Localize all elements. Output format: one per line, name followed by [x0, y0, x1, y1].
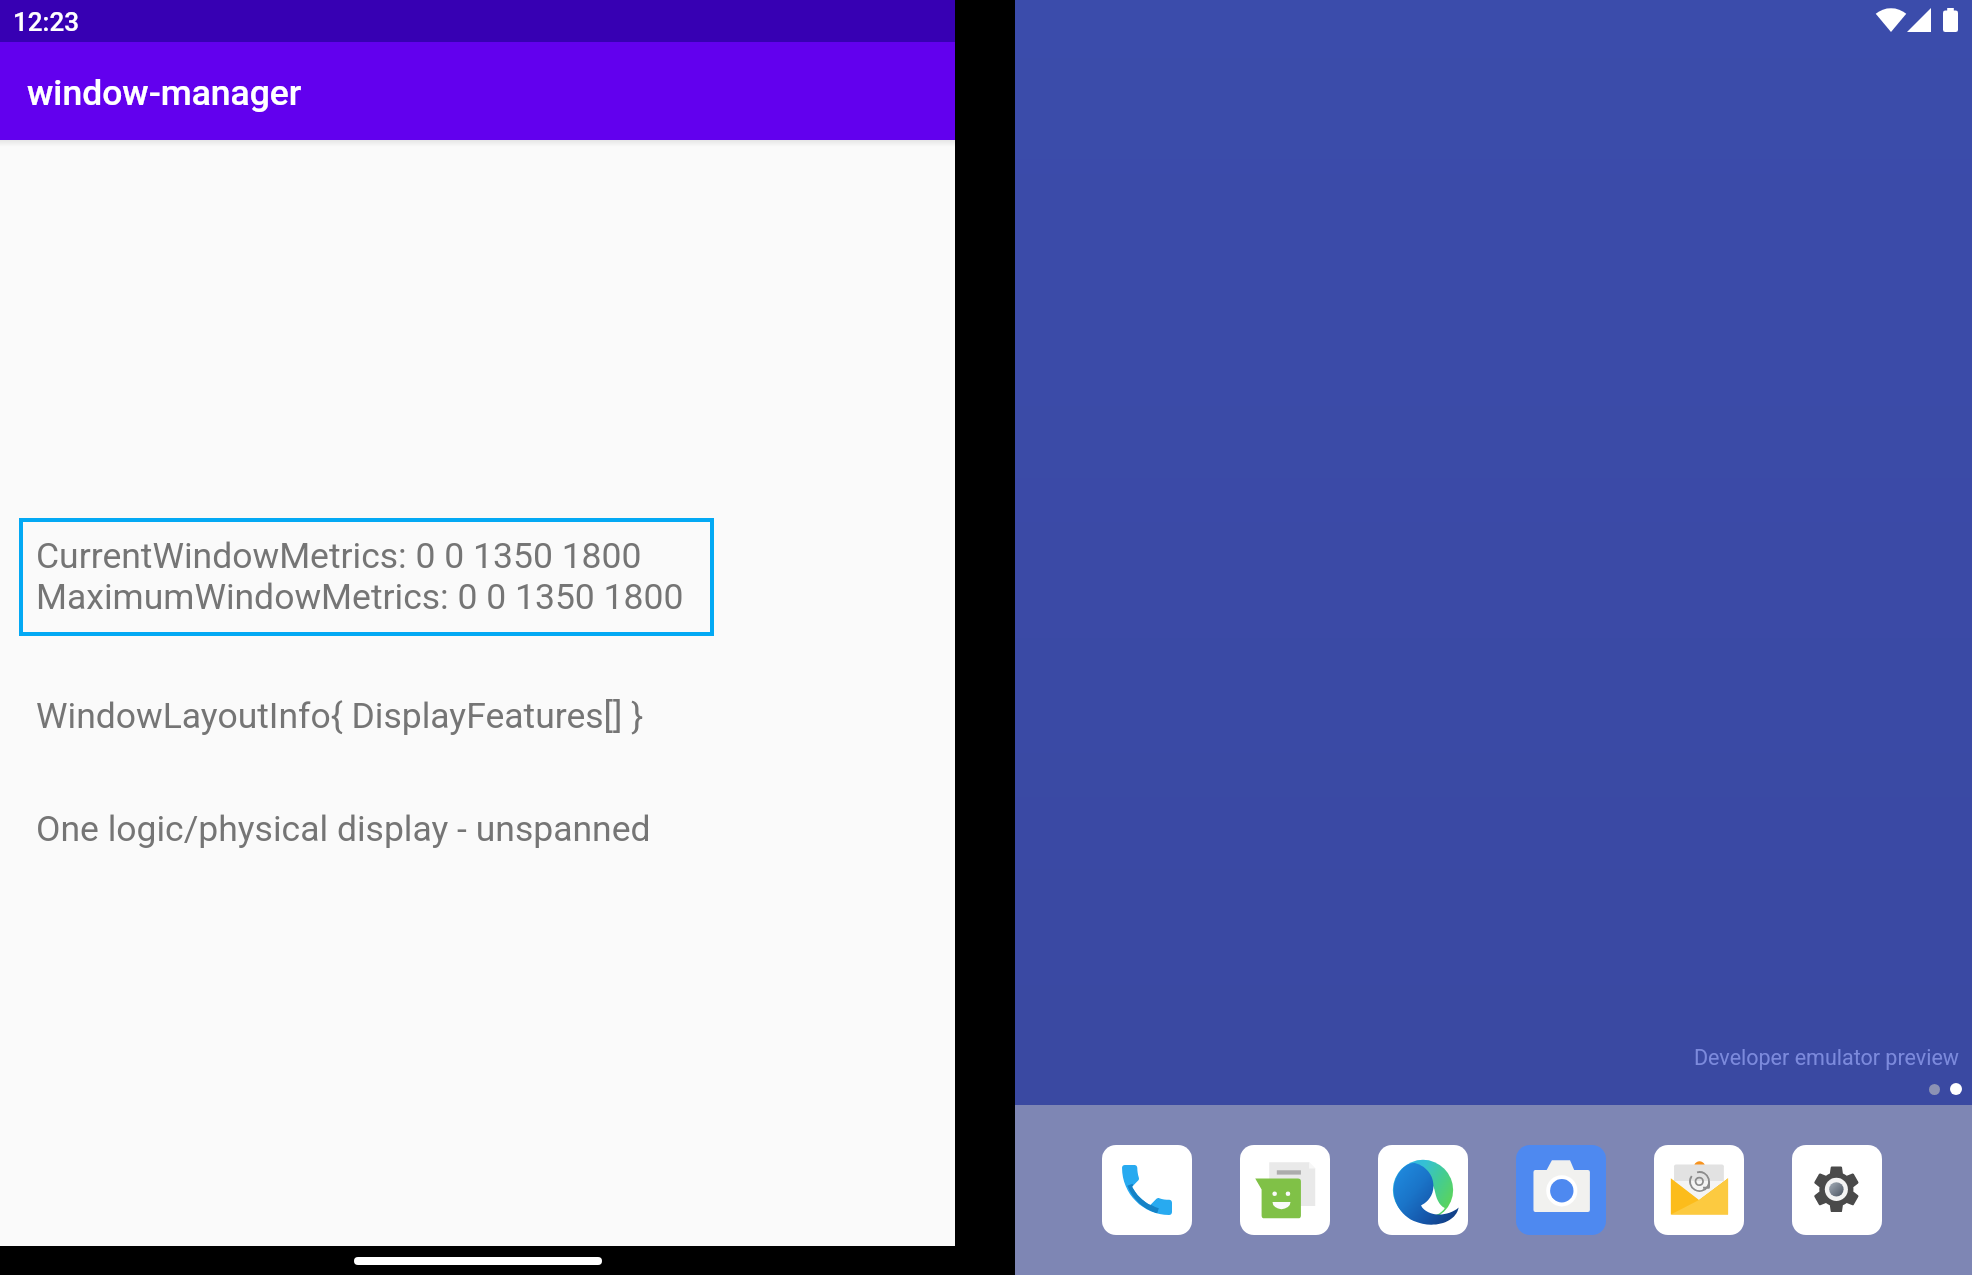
button[interactable]: Edge browser: [1378, 1145, 1468, 1235]
staticText: WindowLayoutInfo{ DisplayFeatures[] }: [36, 695, 644, 737]
button[interactable]: Home screen page 1: [1929, 1084, 1940, 1095]
staticText: 12:23: [13, 7, 79, 37]
staticText: Developer emulator preview: [1694, 1045, 1959, 1070]
button[interactable]: Email: [1654, 1145, 1744, 1235]
staticText: One logic/physical display - unspanned: [36, 808, 651, 850]
button[interactable]: Phone: [1102, 1145, 1192, 1235]
button[interactable]: Home: [0, 1246, 955, 1275]
button[interactable]: Home screen page 2: [1950, 1083, 1962, 1095]
staticText: window-manager: [27, 72, 302, 114]
button[interactable]: Messages: [1240, 1145, 1330, 1235]
staticText: CurrentWindowMetrics: 0 0 1350 1800: [36, 535, 642, 577]
button[interactable]: Camera: [1516, 1145, 1606, 1235]
staticText: MaximumWindowMetrics: 0 0 1350 1800: [36, 576, 684, 618]
button[interactable]: Settings: [1792, 1145, 1882, 1235]
